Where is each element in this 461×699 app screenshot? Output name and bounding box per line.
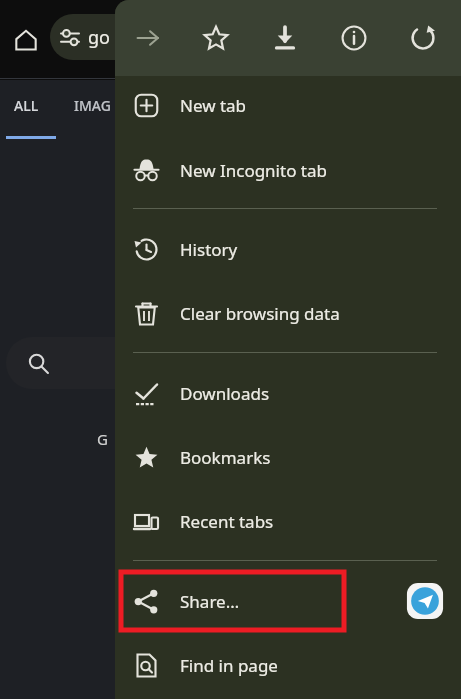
button[interactable]: New tab — [115, 76, 461, 134]
button[interactable]: Bookmark — [194, 16, 238, 60]
staticText: New tab — [180, 94, 247, 117]
button[interactable]: Page info — [332, 16, 376, 60]
staticText: Downloads — [180, 382, 270, 405]
button[interactable]: go — [50, 14, 190, 60]
button[interactable]: Home — [8, 22, 44, 58]
staticText: New Incognito tab — [180, 159, 327, 182]
staticText: History — [180, 238, 238, 261]
staticText: ALL — [14, 96, 39, 115]
staticText: Bookmarks — [180, 446, 271, 469]
staticText: Clear browsing data — [180, 302, 340, 325]
button[interactable]: History — [115, 220, 461, 278]
staticText: G — [97, 429, 108, 449]
button[interactable]: Bookmarks — [115, 428, 461, 486]
staticText: Find in page — [180, 654, 278, 677]
button[interactable]: Download — [263, 16, 307, 60]
staticText: Recent tabs — [180, 510, 274, 533]
button[interactable]: Recent tabs — [115, 492, 461, 550]
button[interactable]: Find in page — [115, 636, 461, 694]
staticText: go — [88, 25, 110, 50]
button[interactable]: Clear browsing data — [115, 284, 461, 342]
button[interactable] — [6, 337, 186, 389]
button[interactable]: Share via Telegram — [403, 579, 447, 623]
button[interactable]: New Incognito tab — [115, 141, 461, 199]
button[interactable]: Forward — [126, 16, 170, 60]
button[interactable]: Share… — [115, 572, 461, 630]
staticText: Share… — [180, 590, 240, 613]
button[interactable]: Reload — [401, 16, 445, 60]
button[interactable]: Downloads — [115, 364, 461, 422]
staticText: IMAG — [74, 96, 111, 115]
